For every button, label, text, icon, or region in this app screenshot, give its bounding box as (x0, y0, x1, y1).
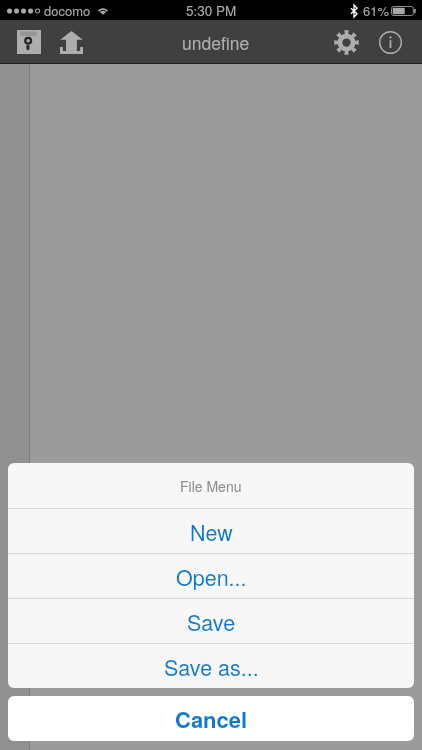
staticText: New (190, 516, 233, 547)
button[interactable]: Open... (8, 553, 414, 598)
staticText: 61% (363, 1, 390, 20)
button[interactable]: Upload (50, 20, 92, 64)
button[interactable]: New (8, 508, 414, 553)
staticText: Save as... (164, 651, 259, 682)
staticText: docomo (44, 1, 91, 20)
staticText: Save (187, 606, 236, 637)
button[interactable]: Save (8, 598, 414, 643)
staticText: File Menu (180, 476, 242, 496)
staticText: Cancel (175, 703, 248, 735)
staticText: Open... (176, 561, 247, 592)
button[interactable]: Info (369, 20, 411, 64)
button[interactable]: Cancel (8, 696, 414, 741)
button[interactable]: Save as... (8, 643, 414, 688)
button[interactable]: Settings (325, 20, 367, 64)
staticText: 5:30 PM (186, 1, 237, 20)
button[interactable]: Save (8, 20, 50, 64)
staticText: undefine (182, 30, 250, 55)
